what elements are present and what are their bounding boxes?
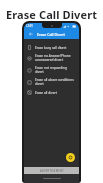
- staticText: Erase Call Divert: [37, 32, 65, 37]
- button[interactable]: Erase busy call divert: [24, 43, 79, 52]
- staticText: Erase busy call divert: [35, 46, 67, 50]
- staticText: ADVERTISEMENT: [40, 169, 64, 172]
- button[interactable]: Erase all divert: [24, 88, 79, 97]
- staticText: Erase not responding divert: [35, 66, 76, 74]
- button[interactable]: Erase no Answer/Phone unanswered divert: [24, 52, 79, 64]
- button[interactable]: Back: [27, 30, 35, 38]
- staticText: Erase all divert: [35, 91, 57, 95]
- staticText: Erase no Answer/Phone unanswered divert: [35, 54, 76, 62]
- button[interactable]: Erase not responding divert: [24, 64, 79, 76]
- button[interactable]: ADVERTISEMENT: [24, 167, 79, 174]
- button[interactable]: Erase all above conditions divert: [24, 76, 79, 88]
- button[interactable]: Apply: [66, 153, 75, 162]
- staticText: Erase all above conditions divert: [35, 78, 76, 86]
- staticText: 12:01: [26, 24, 33, 28]
- staticText: Erase Call Divert: [0, 7, 103, 22]
